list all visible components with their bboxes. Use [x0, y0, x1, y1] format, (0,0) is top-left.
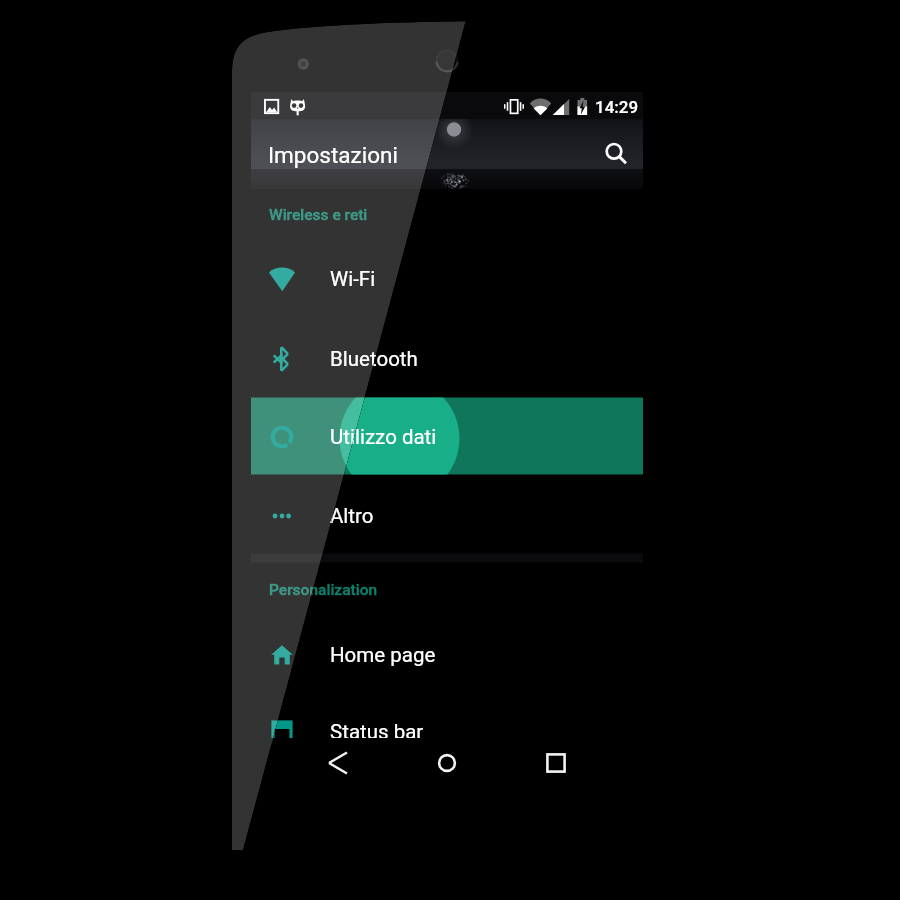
staticText: Utilizzo dati [330, 425, 437, 449]
button[interactable]: Altro [251, 477, 643, 555]
staticText: Impostazioni [268, 142, 398, 168]
staticText: Utilizzo dati [330, 425, 437, 449]
button[interactable]: Wi-Fi [251, 240, 643, 318]
staticText: Bluetooth [330, 347, 418, 371]
button[interactable]: Wi-Fi [251, 240, 643, 318]
staticText: 14:29 [595, 97, 639, 117]
staticText: Wi-Fi [330, 267, 376, 291]
staticText: Altro [330, 504, 374, 528]
button[interactable]: Utilizzo dati [251, 398, 643, 476]
staticText: Impostazioni [268, 142, 398, 168]
button[interactable]: Home page [251, 616, 643, 694]
button[interactable]: Back [316, 741, 360, 785]
button[interactable]: Altro [251, 477, 643, 555]
staticText: Bluetooth [330, 347, 418, 371]
staticText: 14:29 [595, 97, 639, 117]
button[interactable]: Bluetooth [251, 320, 643, 398]
button[interactable]: Status bar [251, 693, 643, 771]
staticText: Personalization [269, 581, 378, 599]
button[interactable]: Home [425, 741, 469, 785]
staticText: Altro [330, 504, 374, 528]
button[interactable]: Back [316, 741, 360, 785]
staticText: Personalization [269, 581, 378, 599]
staticText: Status bar [330, 720, 424, 744]
staticText: Status bar [330, 720, 424, 744]
button[interactable]: Home page [251, 616, 643, 694]
staticText: Wi-Fi [330, 267, 376, 291]
staticText: Wireless e reti [269, 206, 368, 224]
button[interactable]: Status bar [251, 693, 643, 771]
button[interactable]: Utilizzo dati [251, 398, 643, 476]
button[interactable]: Home [425, 741, 469, 785]
staticText: Wireless e reti [269, 206, 368, 224]
button[interactable]: Recent apps [534, 741, 578, 785]
staticText: Home page [330, 643, 436, 667]
button[interactable]: Search [592, 129, 636, 173]
button[interactable]: Bluetooth [251, 320, 643, 398]
staticText: Home page [330, 643, 436, 667]
button[interactable]: Recent apps [534, 741, 578, 785]
button[interactable]: Search [592, 129, 636, 173]
